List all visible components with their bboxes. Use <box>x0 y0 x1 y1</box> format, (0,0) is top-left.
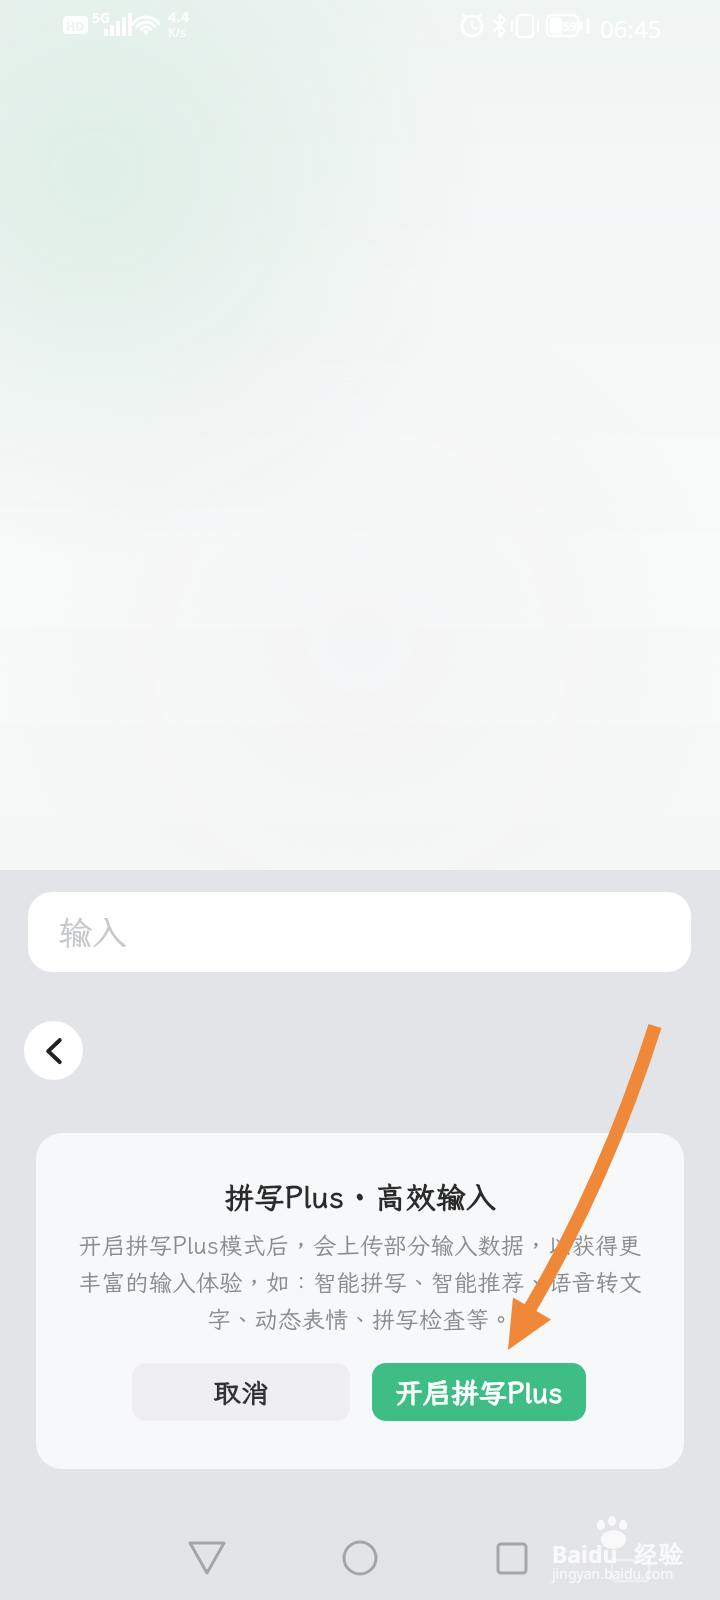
staticText: 06:45 <box>600 12 662 45</box>
staticText: 取消 <box>213 1374 270 1411</box>
button[interactable] <box>483 1530 541 1588</box>
staticText: Baidu <box>552 1538 618 1569</box>
staticText: 开启拼写Plus模式后，会上传部分输入数据，以获得更 丰富的输入体验，如：智能拼… <box>36 1230 684 1335</box>
staticText: K/s <box>168 24 186 40</box>
staticText: 5G <box>92 8 111 27</box>
button[interactable] <box>178 1530 236 1588</box>
staticText: 经验 <box>633 1537 684 1570</box>
staticText: jingyan.baidu.com <box>552 1564 674 1583</box>
staticText: 4.4 <box>168 6 190 26</box>
staticText: 输入 <box>58 910 126 955</box>
button[interactable]: 输入 <box>28 892 691 972</box>
staticText: 拼写Plus · 高效输入 <box>36 1177 684 1217</box>
button[interactable]: 开启拼写Plus <box>372 1363 586 1421</box>
button[interactable] <box>24 1021 83 1080</box>
staticText: 59 <box>563 18 577 34</box>
staticText: HD <box>66 18 84 34</box>
button[interactable] <box>331 1530 389 1588</box>
button[interactable]: 取消 <box>132 1363 350 1421</box>
staticText: 开启拼写Plus <box>395 1374 563 1411</box>
